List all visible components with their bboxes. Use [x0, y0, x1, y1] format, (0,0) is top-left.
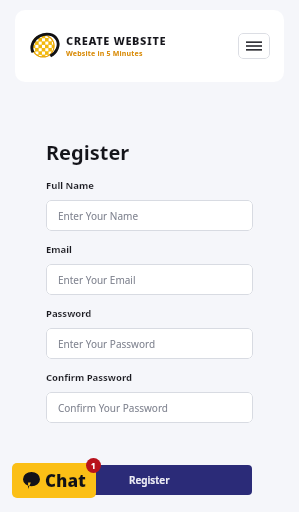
staticText: Register — [129, 473, 170, 487]
button[interactable]: Enter Your Email — [46, 264, 253, 295]
staticText: 1 — [91, 460, 96, 471]
staticText: Enter Your Name — [58, 209, 139, 223]
button[interactable]: Register — [46, 465, 252, 495]
staticText: Full Name — [46, 179, 94, 192]
staticText: Email — [46, 243, 72, 256]
staticText: CREATE WEBSITE — [66, 33, 167, 48]
button[interactable]: Chat — [12, 463, 96, 498]
staticText: Confirm Password — [46, 371, 132, 384]
staticText: Enter Your Email — [58, 273, 136, 287]
staticText: Confirm Your Password — [58, 401, 168, 415]
staticText: Enter Your Password — [58, 337, 156, 351]
staticText: Website in 5 Minutes — [66, 49, 143, 59]
staticText: Chat — [45, 469, 86, 492]
button[interactable]: Confirm Your Password — [46, 392, 253, 423]
staticText: Register — [46, 139, 130, 166]
button[interactable]: Open menu — [238, 33, 270, 59]
staticText: Password — [46, 307, 92, 320]
button[interactable]: CREATE WEBSITE — [29, 30, 167, 62]
button[interactable]: Enter Your Password — [46, 328, 253, 359]
button[interactable]: Enter Your Name — [46, 200, 253, 231]
